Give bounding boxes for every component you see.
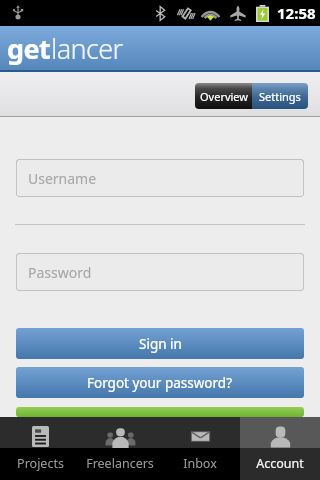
button[interactable]: Freelancers — [80, 417, 160, 480]
staticText: Settings — [259, 89, 301, 104]
other: Inbox — [190, 427, 211, 446]
staticText: lancer — [51, 30, 123, 67]
button[interactable]: Overview — [195, 83, 252, 109]
staticText: Account — [256, 455, 304, 472]
button[interactable]: Username — [16, 159, 304, 197]
button[interactable]: Sign in — [16, 328, 304, 359]
other: Freelancers — [106, 427, 135, 448]
staticText: Forgot your password? — [87, 374, 233, 392]
staticText: get — [7, 30, 51, 67]
button[interactable]: Sign up — [16, 407, 304, 417]
button[interactable]: Password — [16, 253, 304, 291]
button[interactable]: Inbox — [160, 417, 240, 480]
staticText: Password — [28, 263, 92, 282]
staticText: Projects — [17, 455, 64, 472]
button[interactable]: Account — [240, 417, 320, 480]
other: Account — [269, 426, 292, 448]
staticText: Sign in — [139, 335, 182, 353]
button[interactable]: Projects — [0, 417, 80, 480]
staticText: Inbox — [183, 455, 217, 472]
button[interactable]: Settings — [252, 83, 308, 109]
staticText: 12:58 — [277, 3, 316, 23]
staticText: Freelancers — [86, 455, 154, 472]
button[interactable]: Forgot your password? — [16, 367, 304, 398]
staticText: Overview — [200, 89, 248, 104]
staticText: Username — [28, 169, 97, 188]
other: Projects — [32, 426, 49, 447]
